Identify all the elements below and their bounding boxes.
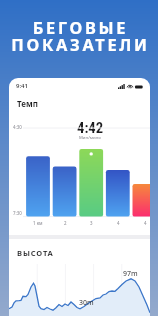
staticText: 4:42 <box>77 119 104 136</box>
staticText: 2 <box>64 220 67 226</box>
staticText: БЕГОВЫЕ ПОКАЗАТЕЛИ <box>11 16 150 56</box>
staticText: 1 км <box>33 220 43 226</box>
staticText: ВЫСОТА <box>17 248 54 258</box>
staticText: 4 <box>117 220 120 226</box>
staticText: 4 <box>144 220 147 226</box>
staticText: Мин/миля <box>79 135 101 141</box>
staticText: 30m <box>79 298 94 308</box>
staticText: 7:30 <box>13 210 22 216</box>
staticText: 97m <box>123 269 138 279</box>
staticText: 3 <box>90 220 93 226</box>
staticText: 4:30 <box>13 124 22 130</box>
staticText: 9:41 <box>16 82 28 90</box>
staticText: Темп <box>17 98 38 109</box>
